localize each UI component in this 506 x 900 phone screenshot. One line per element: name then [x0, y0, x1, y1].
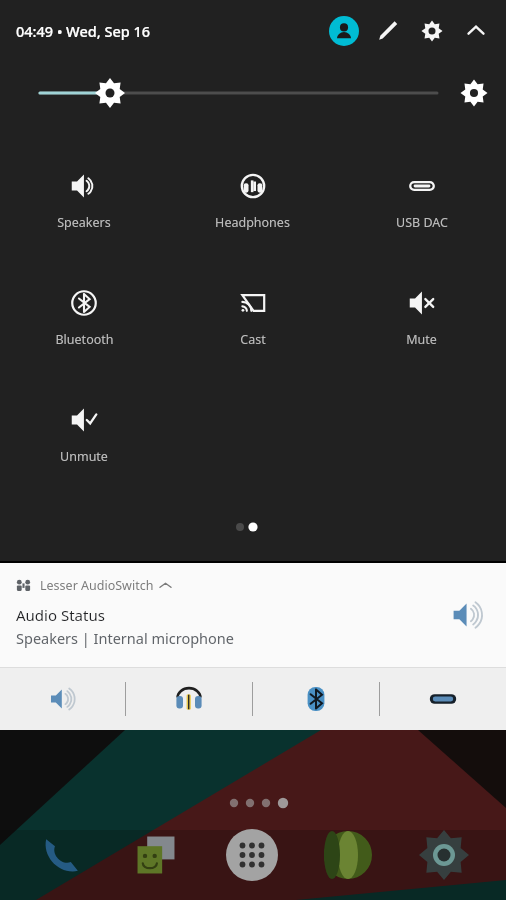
staticText: Headphones [215, 214, 290, 231]
button[interactable]: Settings [410, 9, 454, 53]
staticText: Speakers [57, 214, 111, 231]
button[interactable]: Lesser AudioSwitch [0, 563, 506, 667]
button[interactable]: Headphones [126, 668, 252, 730]
staticText: USB DAC [396, 214, 448, 231]
button[interactable]: Collapse [454, 9, 498, 53]
staticText: Speakers | Internal microphone [16, 628, 234, 648]
button[interactable]: Cast [168, 263, 337, 380]
staticText: Mute [406, 331, 437, 348]
button[interactable]: Unmute [0, 380, 168, 497]
staticText: Cast [240, 331, 266, 348]
staticText: Lesser AudioSwitch [40, 577, 154, 594]
button[interactable]: USB DAC [337, 146, 506, 263]
button[interactable]: Edit tiles [366, 9, 410, 53]
button[interactable]: Bluetooth [0, 263, 168, 380]
button[interactable]: Brightness [0, 62, 506, 124]
button[interactable]: Bluetooth [253, 668, 379, 730]
button[interactable]: USB DAC [380, 668, 506, 730]
button[interactable]: Speakers [0, 668, 125, 730]
staticText: Unmute [60, 448, 108, 465]
button[interactable]: User account [322, 9, 366, 53]
staticText: 04:49 • Wed, Sep 16 [16, 21, 151, 41]
staticText: Audio Status [16, 605, 105, 625]
button[interactable]: Headphones [168, 146, 337, 263]
button[interactable]: Speakers [0, 146, 168, 263]
button[interactable]: Mute [337, 263, 506, 380]
staticText: Bluetooth [55, 331, 114, 348]
